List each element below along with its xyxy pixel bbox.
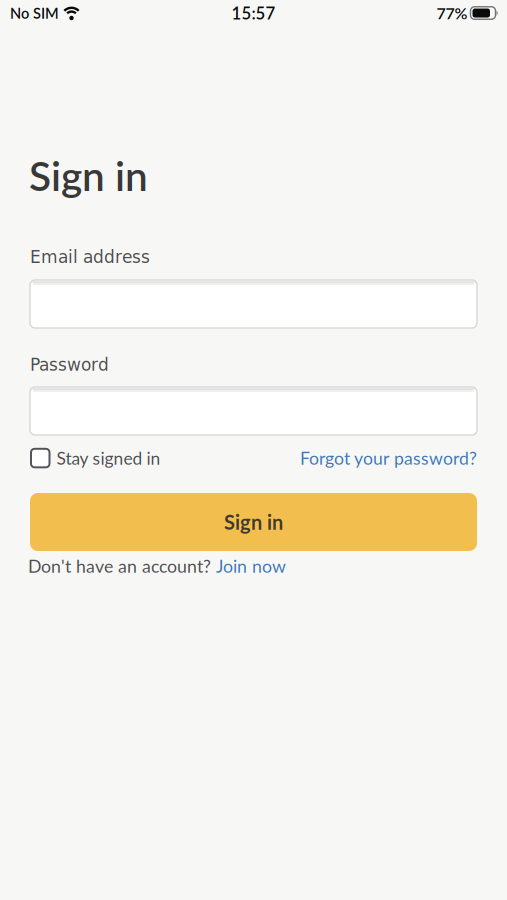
- button[interactable]: Join now: [216, 555, 286, 576]
- staticText: Sign in: [29, 151, 148, 200]
- staticText: 15:57: [231, 3, 275, 23]
- staticText: Don't have an account?: [28, 555, 216, 576]
- staticText: Join now: [216, 555, 286, 576]
- staticText: Password: [30, 355, 109, 375]
- staticText: 77%: [436, 3, 467, 23]
- staticText: No SIM: [10, 4, 59, 22]
- button[interactable]: Forgot your password?: [300, 447, 477, 469]
- button[interactable]: Stay signed in: [31, 448, 160, 468]
- staticText: Email address: [30, 247, 150, 267]
- staticText: Stay signed in: [56, 448, 160, 468]
- staticText: Sign in: [224, 510, 283, 534]
- button[interactable]: Sign in: [30, 493, 477, 551]
- staticText: Forgot your password?: [300, 447, 477, 469]
